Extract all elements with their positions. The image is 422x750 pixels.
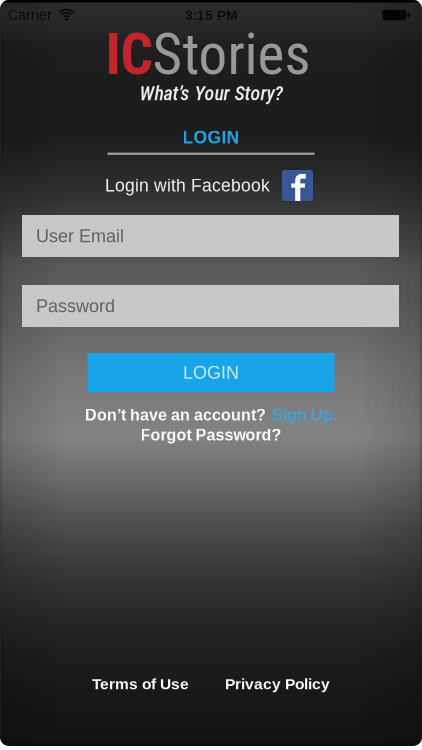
- staticText: Forgot Password?: [140, 426, 281, 444]
- staticText: Stories: [152, 21, 310, 88]
- button[interactable]: LOGIN: [87, 353, 334, 392]
- staticText: Terms of Use: [92, 675, 189, 693]
- button[interactable]: Sign Up.: [272, 406, 337, 424]
- staticText: LOGIN: [182, 128, 239, 147]
- button[interactable]: LOGIN: [182, 127, 239, 147]
- button[interactable]: Privacy Policy: [225, 675, 330, 693]
- staticText: What’s Your Story?: [139, 82, 282, 105]
- button[interactable]: Password: [22, 285, 399, 327]
- staticText: Carrier: [8, 7, 52, 23]
- staticText: Password: [36, 296, 115, 316]
- button[interactable]: Login with Facebook: [105, 169, 313, 202]
- staticText: IC: [105, 21, 152, 88]
- staticText: Sign Up.: [272, 406, 337, 424]
- staticText: Login with Facebook: [105, 176, 270, 195]
- staticText: User Email: [36, 226, 124, 246]
- button[interactable]: Forgot Password?: [140, 425, 281, 445]
- staticText: Don’t have an account?: [85, 406, 266, 424]
- staticText: 3:15 PM: [185, 7, 237, 23]
- staticText: Privacy Policy: [225, 675, 330, 693]
- button[interactable]: User Email: [22, 215, 399, 257]
- button[interactable]: Terms of Use: [92, 675, 189, 693]
- staticText: LOGIN: [183, 362, 239, 382]
